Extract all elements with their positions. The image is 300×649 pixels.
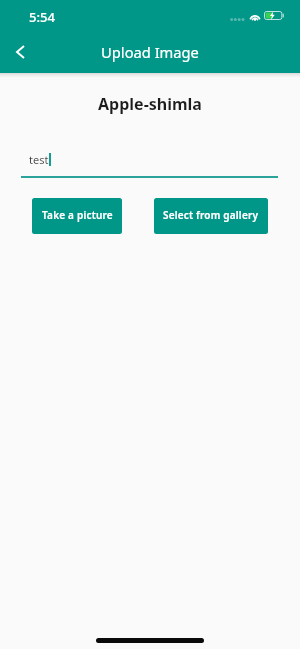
button[interactable]: Take a picture — [32, 198, 122, 234]
button[interactable]: Select from gallery — [154, 198, 268, 234]
staticText: 5:54 — [29, 8, 55, 26]
staticText: Take a picture — [42, 208, 113, 222]
staticText: test — [29, 152, 49, 167]
button[interactable]: Back — [6, 30, 35, 73]
staticText: Select from gallery — [163, 208, 259, 222]
staticText: Upload Image — [0, 42, 300, 62]
staticText: Apple-shimla — [0, 93, 300, 115]
